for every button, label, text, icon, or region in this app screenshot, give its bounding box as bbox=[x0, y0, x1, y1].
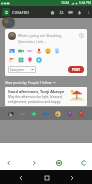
button[interactable]: Music bbox=[54, 110, 62, 118]
button[interactable]: Good afternoon, Tunji Akaoye bbox=[5, 87, 87, 106]
button[interactable]: Sheet bbox=[30, 110, 38, 118]
button[interactable]: Reload bbox=[79, 158, 88, 167]
staticText: What's going on? #hashtag, bbox=[18, 33, 63, 38]
button[interactable]: Forward bbox=[29, 158, 38, 167]
staticText: New posts by: People I follow bbox=[5, 80, 52, 85]
staticText: @mention, Link... bbox=[18, 39, 46, 44]
button[interactable]: People bbox=[58, 9, 64, 15]
button[interactable]: Poll bbox=[17, 56, 24, 63]
button[interactable]: Messages bbox=[67, 9, 73, 15]
button[interactable]: POST bbox=[68, 66, 84, 73]
button[interactable]: Audio bbox=[35, 47, 42, 54]
button[interactable]: Photo bbox=[8, 47, 15, 54]
button[interactable]: Back bbox=[16, 173, 25, 182]
button[interactable]: Subtitles bbox=[19, 110, 27, 118]
button[interactable]: Recent apps bbox=[67, 173, 76, 182]
button[interactable]: Favorite bbox=[77, 110, 85, 118]
button[interactable]: Gif bbox=[26, 47, 33, 54]
button[interactable]: Audience settings bbox=[78, 32, 84, 38]
staticText: Everyone bbox=[10, 68, 24, 72]
staticText: CUSAFRO bbox=[12, 10, 30, 15]
button[interactable]: Event bbox=[8, 56, 15, 63]
staticText: enlightened, productive and happy. bbox=[8, 100, 62, 104]
button[interactable]: Notifications bbox=[76, 9, 82, 15]
button[interactable]: New posts by: People I follow bbox=[5, 80, 92, 85]
button[interactable]: Gallery bbox=[7, 110, 15, 118]
button[interactable]: Location bbox=[26, 56, 33, 63]
button[interactable]: Home bbox=[42, 173, 51, 182]
button[interactable]: Your profile bbox=[8, 32, 16, 40]
staticText: May this afternoon be light, blessed, bbox=[8, 95, 63, 99]
button[interactable]: Book bbox=[66, 110, 74, 118]
button[interactable]: Video bbox=[17, 47, 24, 54]
button[interactable]: Profile bbox=[2, 17, 15, 28]
staticText: 10:34 bbox=[61, 1, 70, 5]
staticText: POST bbox=[72, 68, 81, 72]
button[interactable]: Back bbox=[4, 158, 13, 167]
button[interactable]: Document bbox=[53, 47, 60, 54]
button[interactable]: More options bbox=[85, 9, 91, 15]
staticText: 5:54 PM bbox=[79, 1, 91, 5]
button[interactable]: Home bbox=[54, 158, 63, 167]
button[interactable]: Everyone bbox=[8, 66, 36, 73]
button[interactable]: Logo bbox=[2, 8, 10, 16]
button[interactable]: Home bbox=[49, 9, 55, 15]
button[interactable]: Video call bbox=[42, 110, 50, 118]
button[interactable]: Live bbox=[35, 56, 42, 63]
button[interactable]: Emoji bbox=[44, 47, 51, 54]
staticText: Good afternoon, Tunji Akaoye bbox=[8, 89, 65, 94]
